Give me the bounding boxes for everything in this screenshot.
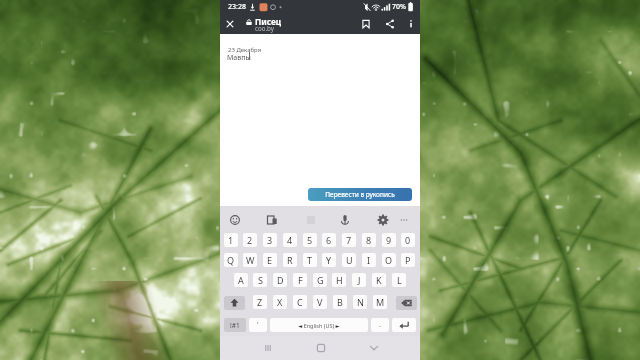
staticText: 4 — [287, 234, 293, 246]
staticText: O — [385, 254, 393, 266]
button[interactable]: 2 — [243, 233, 257, 247]
button[interactable]: Enter — [392, 318, 416, 332]
button[interactable]: Close — [222, 16, 238, 32]
button[interactable]: P — [401, 253, 415, 267]
button[interactable]: X — [273, 295, 287, 309]
button[interactable]: H — [332, 273, 346, 287]
staticText: ◄ English (US) ► — [298, 322, 340, 329]
staticText: C — [297, 296, 303, 308]
button[interactable]: Q — [224, 253, 238, 267]
staticText: 0 — [405, 234, 411, 246]
staticText: S — [258, 274, 263, 286]
button[interactable]: E — [263, 253, 277, 267]
button[interactable]: 7 — [342, 233, 356, 247]
button[interactable]: Home — [311, 338, 331, 358]
staticText: K — [376, 274, 382, 286]
button[interactable]: V — [313, 295, 327, 309]
button[interactable]: B — [333, 295, 347, 309]
staticText: 3 — [267, 234, 273, 246]
button[interactable]: M — [373, 295, 387, 309]
staticText: A — [238, 274, 244, 286]
staticText: 9 — [386, 234, 392, 246]
staticText: Писец — [255, 16, 282, 27]
button[interactable]: R — [283, 253, 297, 267]
staticText: W — [246, 254, 255, 266]
button[interactable]: W — [243, 253, 257, 267]
button[interactable]: D — [273, 273, 287, 287]
button[interactable]: ◄ English (US) ► — [270, 318, 368, 332]
button[interactable]: T — [303, 253, 317, 267]
button[interactable]: ' — [249, 318, 267, 332]
button[interactable]: C — [293, 295, 307, 309]
button[interactable]: 6 — [322, 233, 336, 247]
button[interactable]: Hide keyboard — [364, 338, 384, 358]
staticText: I — [367, 254, 371, 266]
staticText: 23:28 — [228, 2, 246, 12]
staticText: 5 — [307, 234, 313, 246]
button[interactable]: Settings — [375, 212, 391, 228]
button[interactable]: More — [396, 212, 412, 228]
button[interactable]: G — [313, 273, 327, 287]
button[interactable]: 5 — [303, 233, 317, 247]
staticText: Z — [257, 296, 263, 308]
button[interactable]: J — [352, 273, 366, 287]
button[interactable]: K — [372, 273, 386, 287]
button[interactable]: U — [342, 253, 356, 267]
button[interactable]: 3 — [263, 233, 277, 247]
staticText: Перевести в рукопись — [325, 190, 395, 199]
button[interactable]: F — [293, 273, 307, 287]
button[interactable]: A — [234, 273, 248, 287]
button[interactable]: 1 — [224, 233, 238, 247]
button[interactable]: 8 — [362, 233, 376, 247]
button[interactable]: Y — [322, 253, 336, 267]
button[interactable]: Emoji — [227, 212, 243, 228]
staticText: D — [277, 274, 284, 286]
staticText: M — [376, 296, 385, 308]
button[interactable]: Share — [382, 16, 398, 32]
staticText: U — [346, 254, 353, 266]
staticText: F — [298, 274, 303, 286]
staticText: 23 Декабря — [228, 46, 262, 54]
staticText: . — [379, 320, 381, 330]
staticText: E — [267, 254, 273, 266]
button[interactable]: O — [382, 253, 396, 267]
staticText: X — [277, 296, 283, 308]
staticText: G — [317, 274, 324, 286]
button[interactable]: Bookmark — [358, 16, 374, 32]
button[interactable]: S — [253, 273, 267, 287]
button[interactable]: Clipboard — [264, 212, 280, 228]
staticText: Q — [227, 254, 235, 266]
staticText: H — [336, 274, 343, 286]
button[interactable]: Translate — [303, 212, 319, 228]
button[interactable]: Перевести в рукопись — [308, 188, 412, 201]
button[interactable]: . — [371, 318, 389, 332]
staticText: 6 — [326, 234, 332, 246]
staticText: T — [307, 254, 313, 266]
button[interactable]: 0 — [401, 233, 415, 247]
staticText: 7 — [346, 234, 352, 246]
staticText: !#1 — [230, 321, 240, 330]
staticText: coo.by — [255, 24, 274, 32]
staticText: P — [405, 254, 411, 266]
staticText: 8 — [366, 234, 372, 246]
button[interactable]: 4 — [283, 233, 297, 247]
staticText: Y — [326, 254, 332, 266]
staticText: ' — [257, 320, 259, 330]
staticText: V — [317, 296, 323, 308]
button[interactable]: Shift — [224, 296, 245, 310]
button[interactable]: N — [353, 295, 367, 309]
button[interactable]: Backspace — [396, 296, 417, 310]
button[interactable]: Z — [253, 295, 267, 309]
button[interactable]: Recents — [258, 338, 278, 358]
button[interactable]: 9 — [382, 233, 396, 247]
button[interactable]: !#1 — [224, 318, 246, 332]
staticText: B — [337, 296, 343, 308]
staticText: R — [287, 254, 293, 266]
button[interactable]: L — [392, 273, 406, 287]
staticText: 2 — [247, 234, 253, 246]
button[interactable]: I — [362, 253, 376, 267]
staticText: 1 — [228, 234, 234, 246]
button[interactable]: More options — [403, 16, 419, 32]
button[interactable]: Voice input — [337, 212, 353, 228]
staticText: N — [357, 296, 364, 308]
